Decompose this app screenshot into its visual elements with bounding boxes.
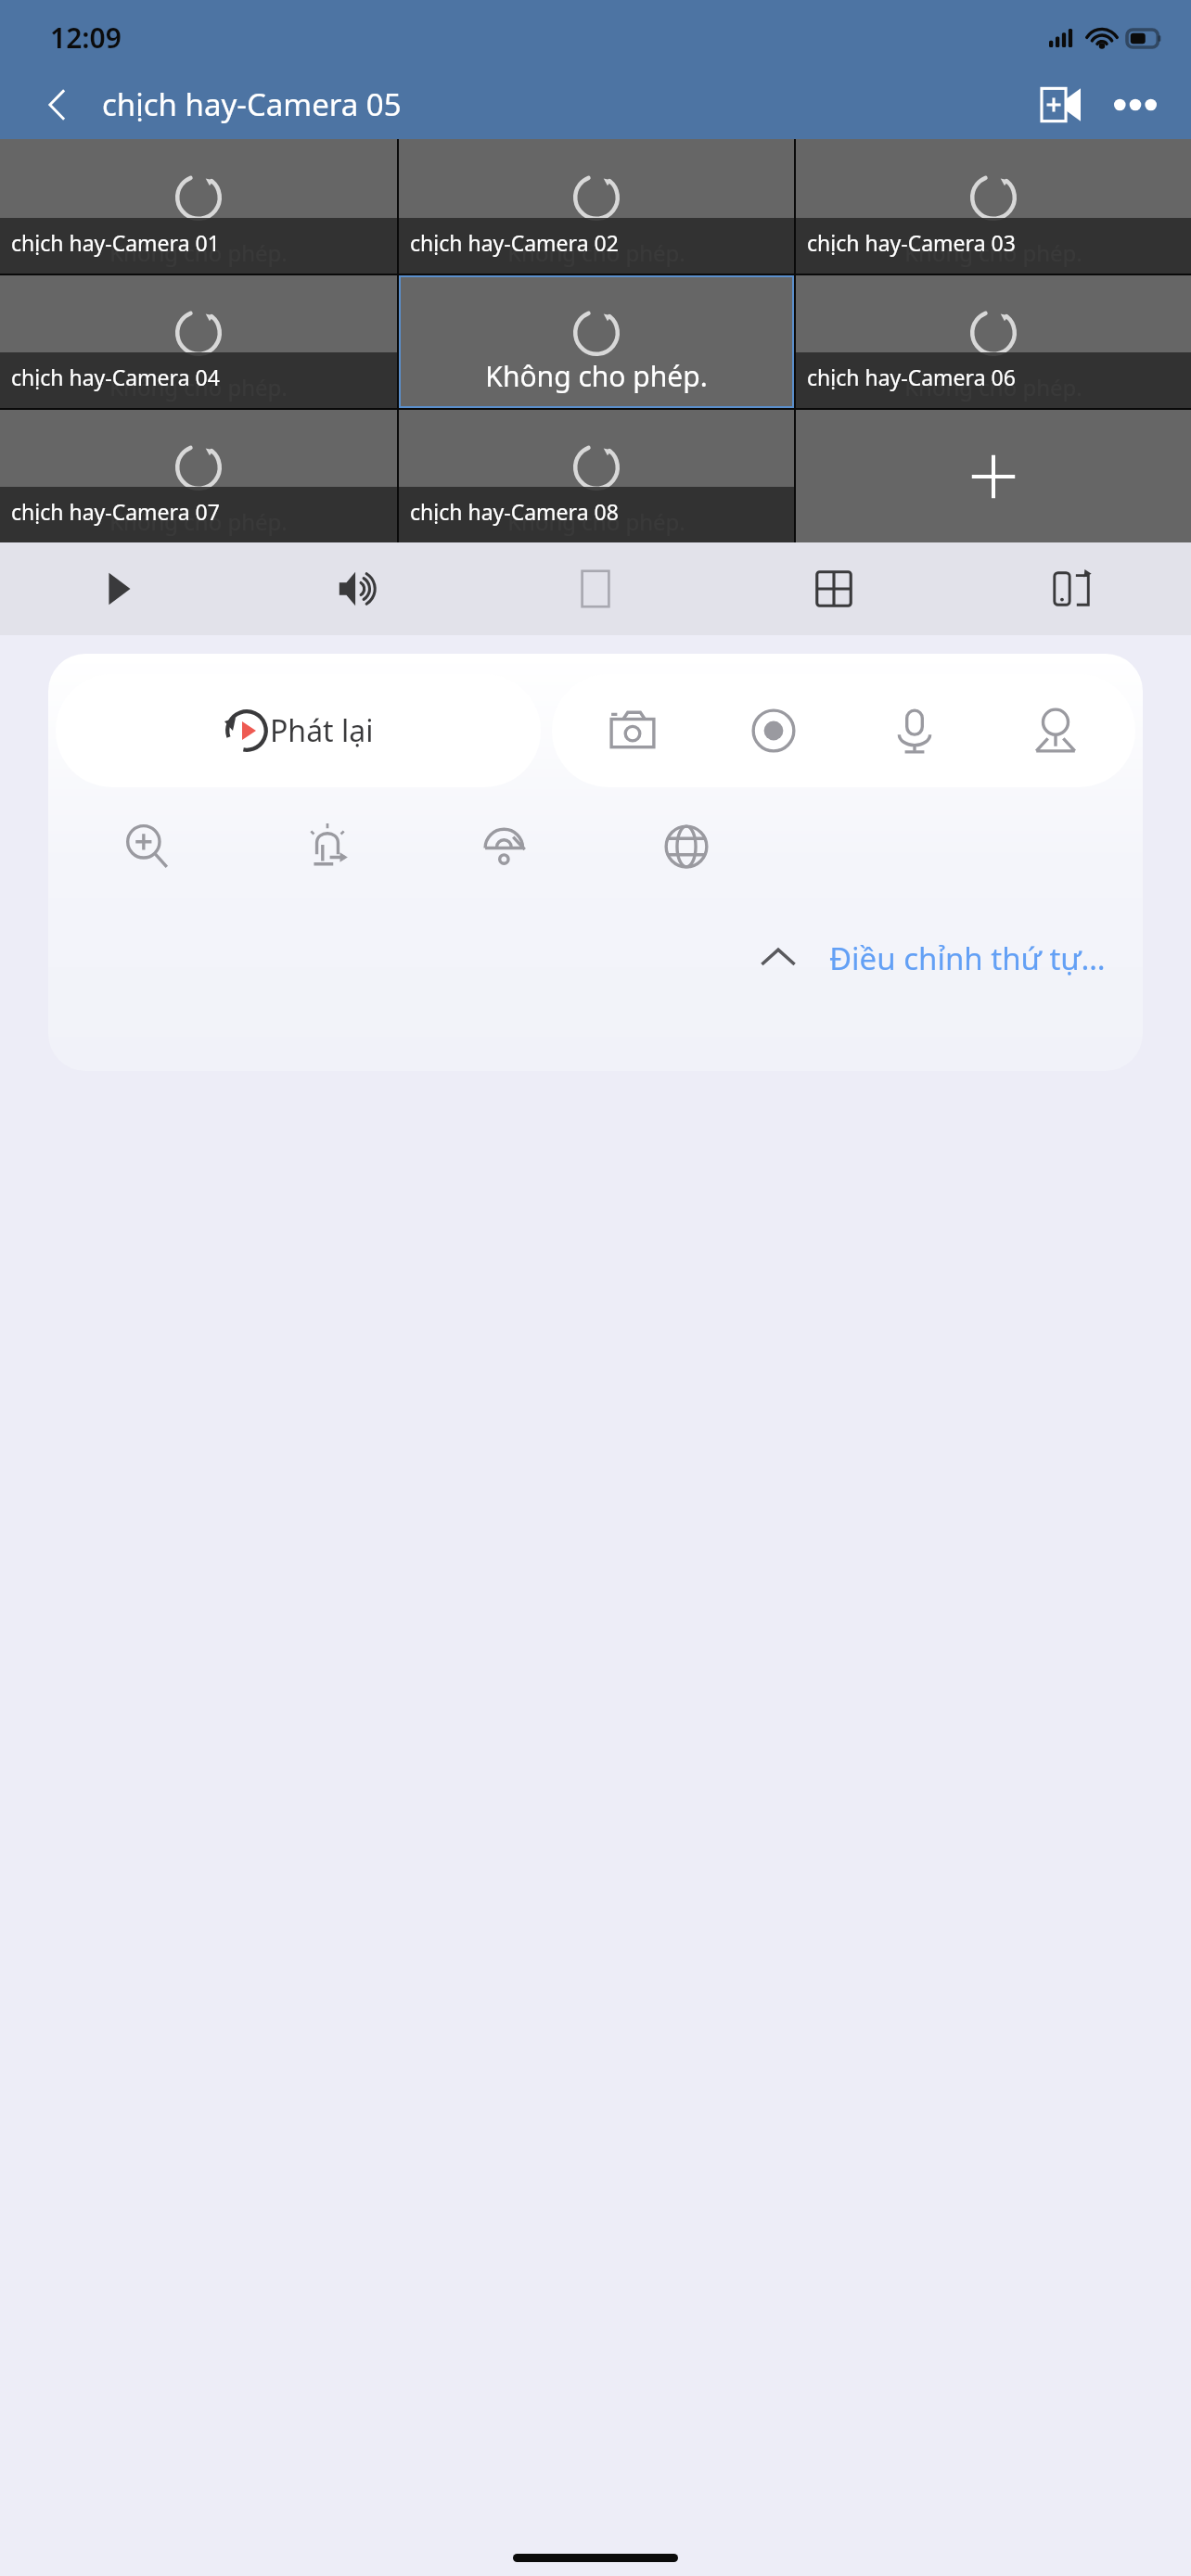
staticText: chịch hay-Camera 07 xyxy=(11,497,220,526)
staticText: chịch hay-Camera 08 xyxy=(410,497,619,526)
staticText: 12:09 xyxy=(50,19,122,57)
button[interactable]: Không cho phép. xyxy=(0,410,397,542)
staticText: Không cho phép. xyxy=(109,372,288,402)
button[interactable]: Alarm light xyxy=(237,791,417,902)
staticText: Không cho phép. xyxy=(109,506,288,537)
button[interactable]: Panorama xyxy=(596,791,775,902)
staticText: chịch hay-Camera 05 xyxy=(102,83,402,125)
staticText: Không cho phép. xyxy=(109,237,288,268)
button[interactable]: More options xyxy=(1098,70,1172,139)
staticText: Điều chỉnh thứ tự… xyxy=(829,937,1106,979)
button[interactable]: Volume xyxy=(237,542,476,635)
staticText: chịch hay-Camera 06 xyxy=(807,363,1016,391)
staticText: chịch hay-Camera 03 xyxy=(807,228,1016,257)
button[interactable]: Không cho phép. xyxy=(0,275,397,408)
button[interactable]: Fisheye view xyxy=(417,791,596,902)
staticText: chịch hay-Camera 01 xyxy=(11,228,220,257)
button[interactable]: Play xyxy=(0,542,237,635)
button[interactable]: Không cho phép. xyxy=(796,275,1191,408)
staticText: Không cho phép. xyxy=(904,237,1082,268)
button[interactable]: Không cho phép. xyxy=(796,139,1191,274)
button[interactable]: Phát lại xyxy=(56,674,541,787)
button[interactable]: Không cho phép. xyxy=(399,275,794,408)
button[interactable]: Zoom xyxy=(58,791,237,902)
button[interactable]: Speaker xyxy=(985,674,1126,787)
button[interactable]: Layout xyxy=(714,542,953,635)
button[interactable]: Không cho phép. xyxy=(399,410,794,542)
staticText: Không cho phép. xyxy=(507,506,685,537)
button[interactable]: Add camera xyxy=(1024,70,1098,139)
button[interactable]: Back xyxy=(24,71,91,138)
staticText: Phát lại xyxy=(270,710,374,751)
staticText: Không cho phép. xyxy=(904,372,1082,402)
button[interactable]: Không cho phép. xyxy=(399,139,794,274)
staticText: Không cho phép. xyxy=(485,357,708,395)
staticText: chịch hay-Camera 04 xyxy=(11,363,220,391)
staticText: chịch hay-Camera 02 xyxy=(410,228,619,257)
button[interactable]: Collapse xyxy=(727,907,829,1009)
staticText: Không cho phép. xyxy=(507,237,685,268)
button[interactable]: Microphone xyxy=(844,674,985,787)
button[interactable]: Điều chỉnh thứ tự… xyxy=(829,937,1106,979)
button[interactable]: Stream quality SD xyxy=(476,542,714,635)
button[interactable]: Add camera cell xyxy=(796,410,1191,542)
button[interactable]: Rotate screen xyxy=(953,542,1191,635)
button[interactable]: Không cho phép. xyxy=(0,139,397,274)
button[interactable]: Record xyxy=(703,674,844,787)
button[interactable]: Snapshot xyxy=(561,674,703,787)
